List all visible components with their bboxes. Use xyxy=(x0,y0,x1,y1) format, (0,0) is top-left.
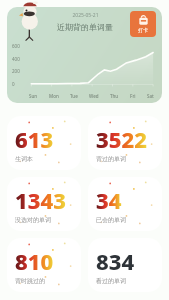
staticText: 已会的单词 xyxy=(96,216,126,224)
staticText: Thu xyxy=(110,93,119,99)
staticText: 3522 xyxy=(96,124,147,154)
staticText: 近期背的单词量 xyxy=(57,22,113,32)
staticText: Mon xyxy=(49,93,59,99)
staticText: 0 xyxy=(12,81,15,87)
staticText: 2025-05-21 xyxy=(72,12,99,19)
button[interactable]: 1343 xyxy=(7,177,81,231)
staticText: Tue xyxy=(70,93,78,99)
staticText: 34 xyxy=(96,185,122,215)
staticText: 背时跳过的 xyxy=(15,277,45,285)
staticText: 打卡 xyxy=(138,27,148,33)
staticText: 400 xyxy=(12,56,20,62)
button[interactable]: 613 xyxy=(7,116,81,170)
button[interactable]: 810 xyxy=(7,238,81,292)
staticText: 600 xyxy=(12,43,20,49)
staticText: 810 xyxy=(15,246,54,276)
staticText: 生词本 xyxy=(15,155,33,163)
staticText: 1343 xyxy=(15,185,66,215)
button[interactable]: 打卡 xyxy=(130,11,156,37)
staticText: 没选对的单词 xyxy=(15,216,51,224)
button[interactable]: 2025-05-21 xyxy=(7,7,162,103)
staticText: Wed xyxy=(89,93,99,99)
button[interactable]: 3522 xyxy=(88,116,162,170)
staticText: 834 xyxy=(96,246,135,276)
staticText: Sat xyxy=(147,93,154,99)
staticText: 看过的单词 xyxy=(96,277,126,285)
staticText: 背过的单词 xyxy=(96,155,126,163)
staticText: Sun xyxy=(29,93,38,99)
staticText: 613 xyxy=(15,124,54,154)
other: Mascot xyxy=(19,1,41,41)
button[interactable]: 834 xyxy=(88,238,162,292)
staticText: 200 xyxy=(12,68,20,74)
button[interactable]: 34 xyxy=(88,177,162,231)
staticText: Fri xyxy=(130,93,136,99)
